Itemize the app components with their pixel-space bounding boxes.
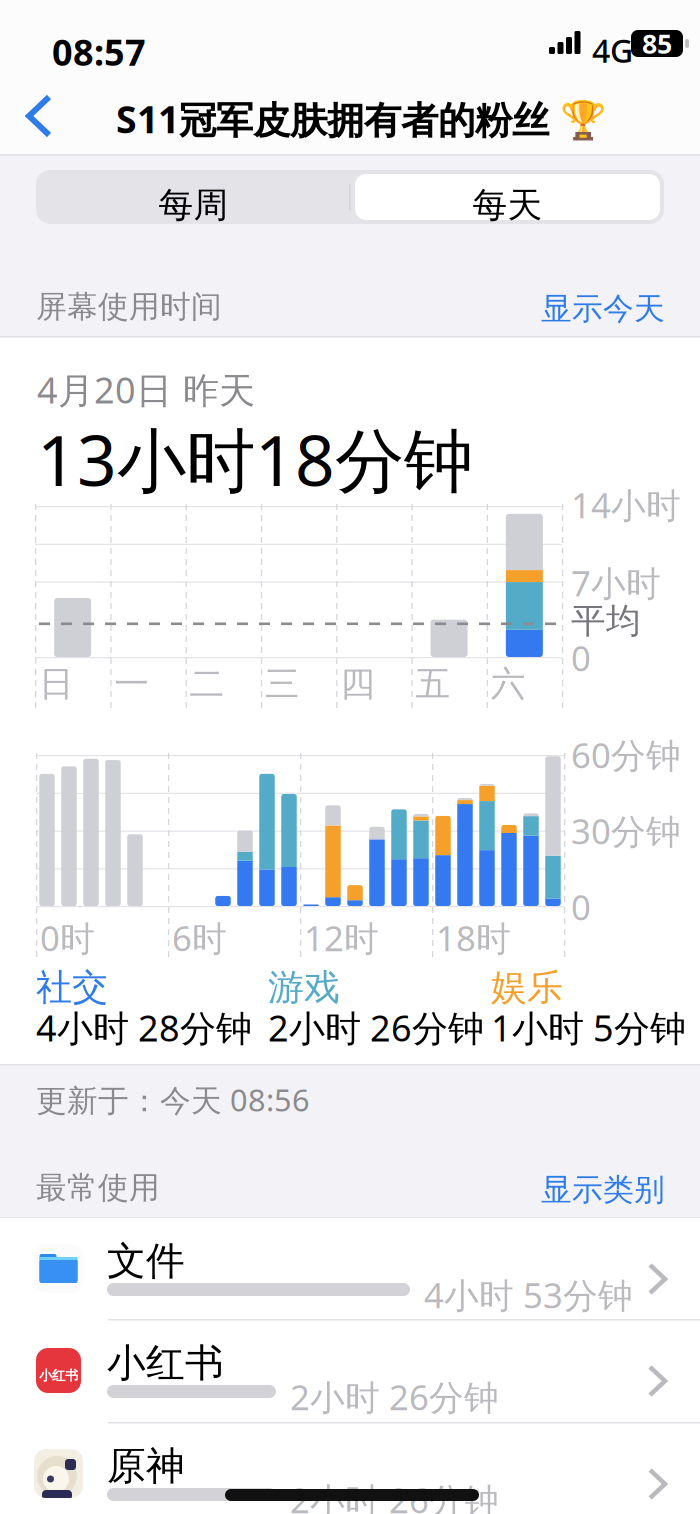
staticText: 四: [340, 663, 375, 705]
staticText: 显示今天: [541, 290, 665, 328]
staticText: 更新于：今天 08:56: [36, 1079, 310, 1120]
staticText: 一: [114, 663, 149, 705]
staticText: 14小时: [571, 482, 681, 528]
staticText: 2小时 26分钟: [290, 1477, 499, 1514]
staticText: 五: [415, 663, 450, 705]
staticText: 原神: [107, 1442, 185, 1490]
staticText: 2小时 26分钟: [290, 1374, 499, 1420]
staticText: 社交: [36, 965, 108, 1010]
staticText: 60分钟: [571, 732, 681, 778]
staticText: 85: [642, 26, 672, 61]
staticText: 文件: [107, 1237, 185, 1285]
staticText: 08:57: [52, 28, 146, 76]
staticText: 4小时 28分钟: [36, 1004, 252, 1051]
staticText: 最常使用: [36, 1169, 160, 1206]
staticText: 30分钟: [571, 808, 681, 854]
staticText: S11冠军皮肤拥有者的粉丝 🏆: [116, 94, 606, 144]
button[interactable]: 小红书: [0, 1320, 700, 1422]
button[interactable]: 返回: [0, 0, 80, 70]
staticText: 娱乐: [491, 965, 563, 1010]
button[interactable]: 文件: [0, 1218, 700, 1320]
staticText: 18时: [436, 915, 511, 961]
staticText: 0: [571, 635, 591, 681]
staticText: 1小时 5分钟: [491, 1004, 686, 1051]
button[interactable]: 显示今天: [0, 0, 700, 40]
staticText: 平均: [571, 600, 641, 642]
staticText: 0: [571, 884, 591, 930]
staticText: 0时: [40, 915, 95, 961]
staticText: 小红书: [107, 1339, 224, 1387]
button[interactable]: 显示类别: [0, 0, 700, 40]
button[interactable]: 原神: [0, 1423, 700, 1514]
staticText: 7小时: [571, 560, 661, 606]
staticText: 每周: [158, 184, 228, 227]
staticText: 6时: [172, 915, 227, 961]
staticText: 13小时18分钟: [37, 413, 473, 505]
staticText: 屏幕使用时间: [36, 288, 222, 325]
staticText: 二: [190, 663, 225, 705]
staticText: 12时: [304, 915, 379, 961]
staticText: 4小时 53分钟: [424, 1272, 633, 1318]
staticText: 2小时 26分钟: [268, 1004, 484, 1051]
button[interactable]: 每周: [0, 0, 700, 64]
staticText: 显示类别: [541, 1171, 665, 1209]
staticText: 六: [491, 663, 526, 705]
staticText: 每天: [472, 184, 542, 227]
staticText: 4G: [592, 29, 633, 71]
staticText: 三: [265, 663, 300, 705]
staticText: 游戏: [268, 965, 340, 1010]
staticText: 4月20日 昨天: [37, 366, 255, 413]
staticText: 小红书: [39, 1367, 78, 1384]
staticText: 日: [39, 663, 74, 705]
